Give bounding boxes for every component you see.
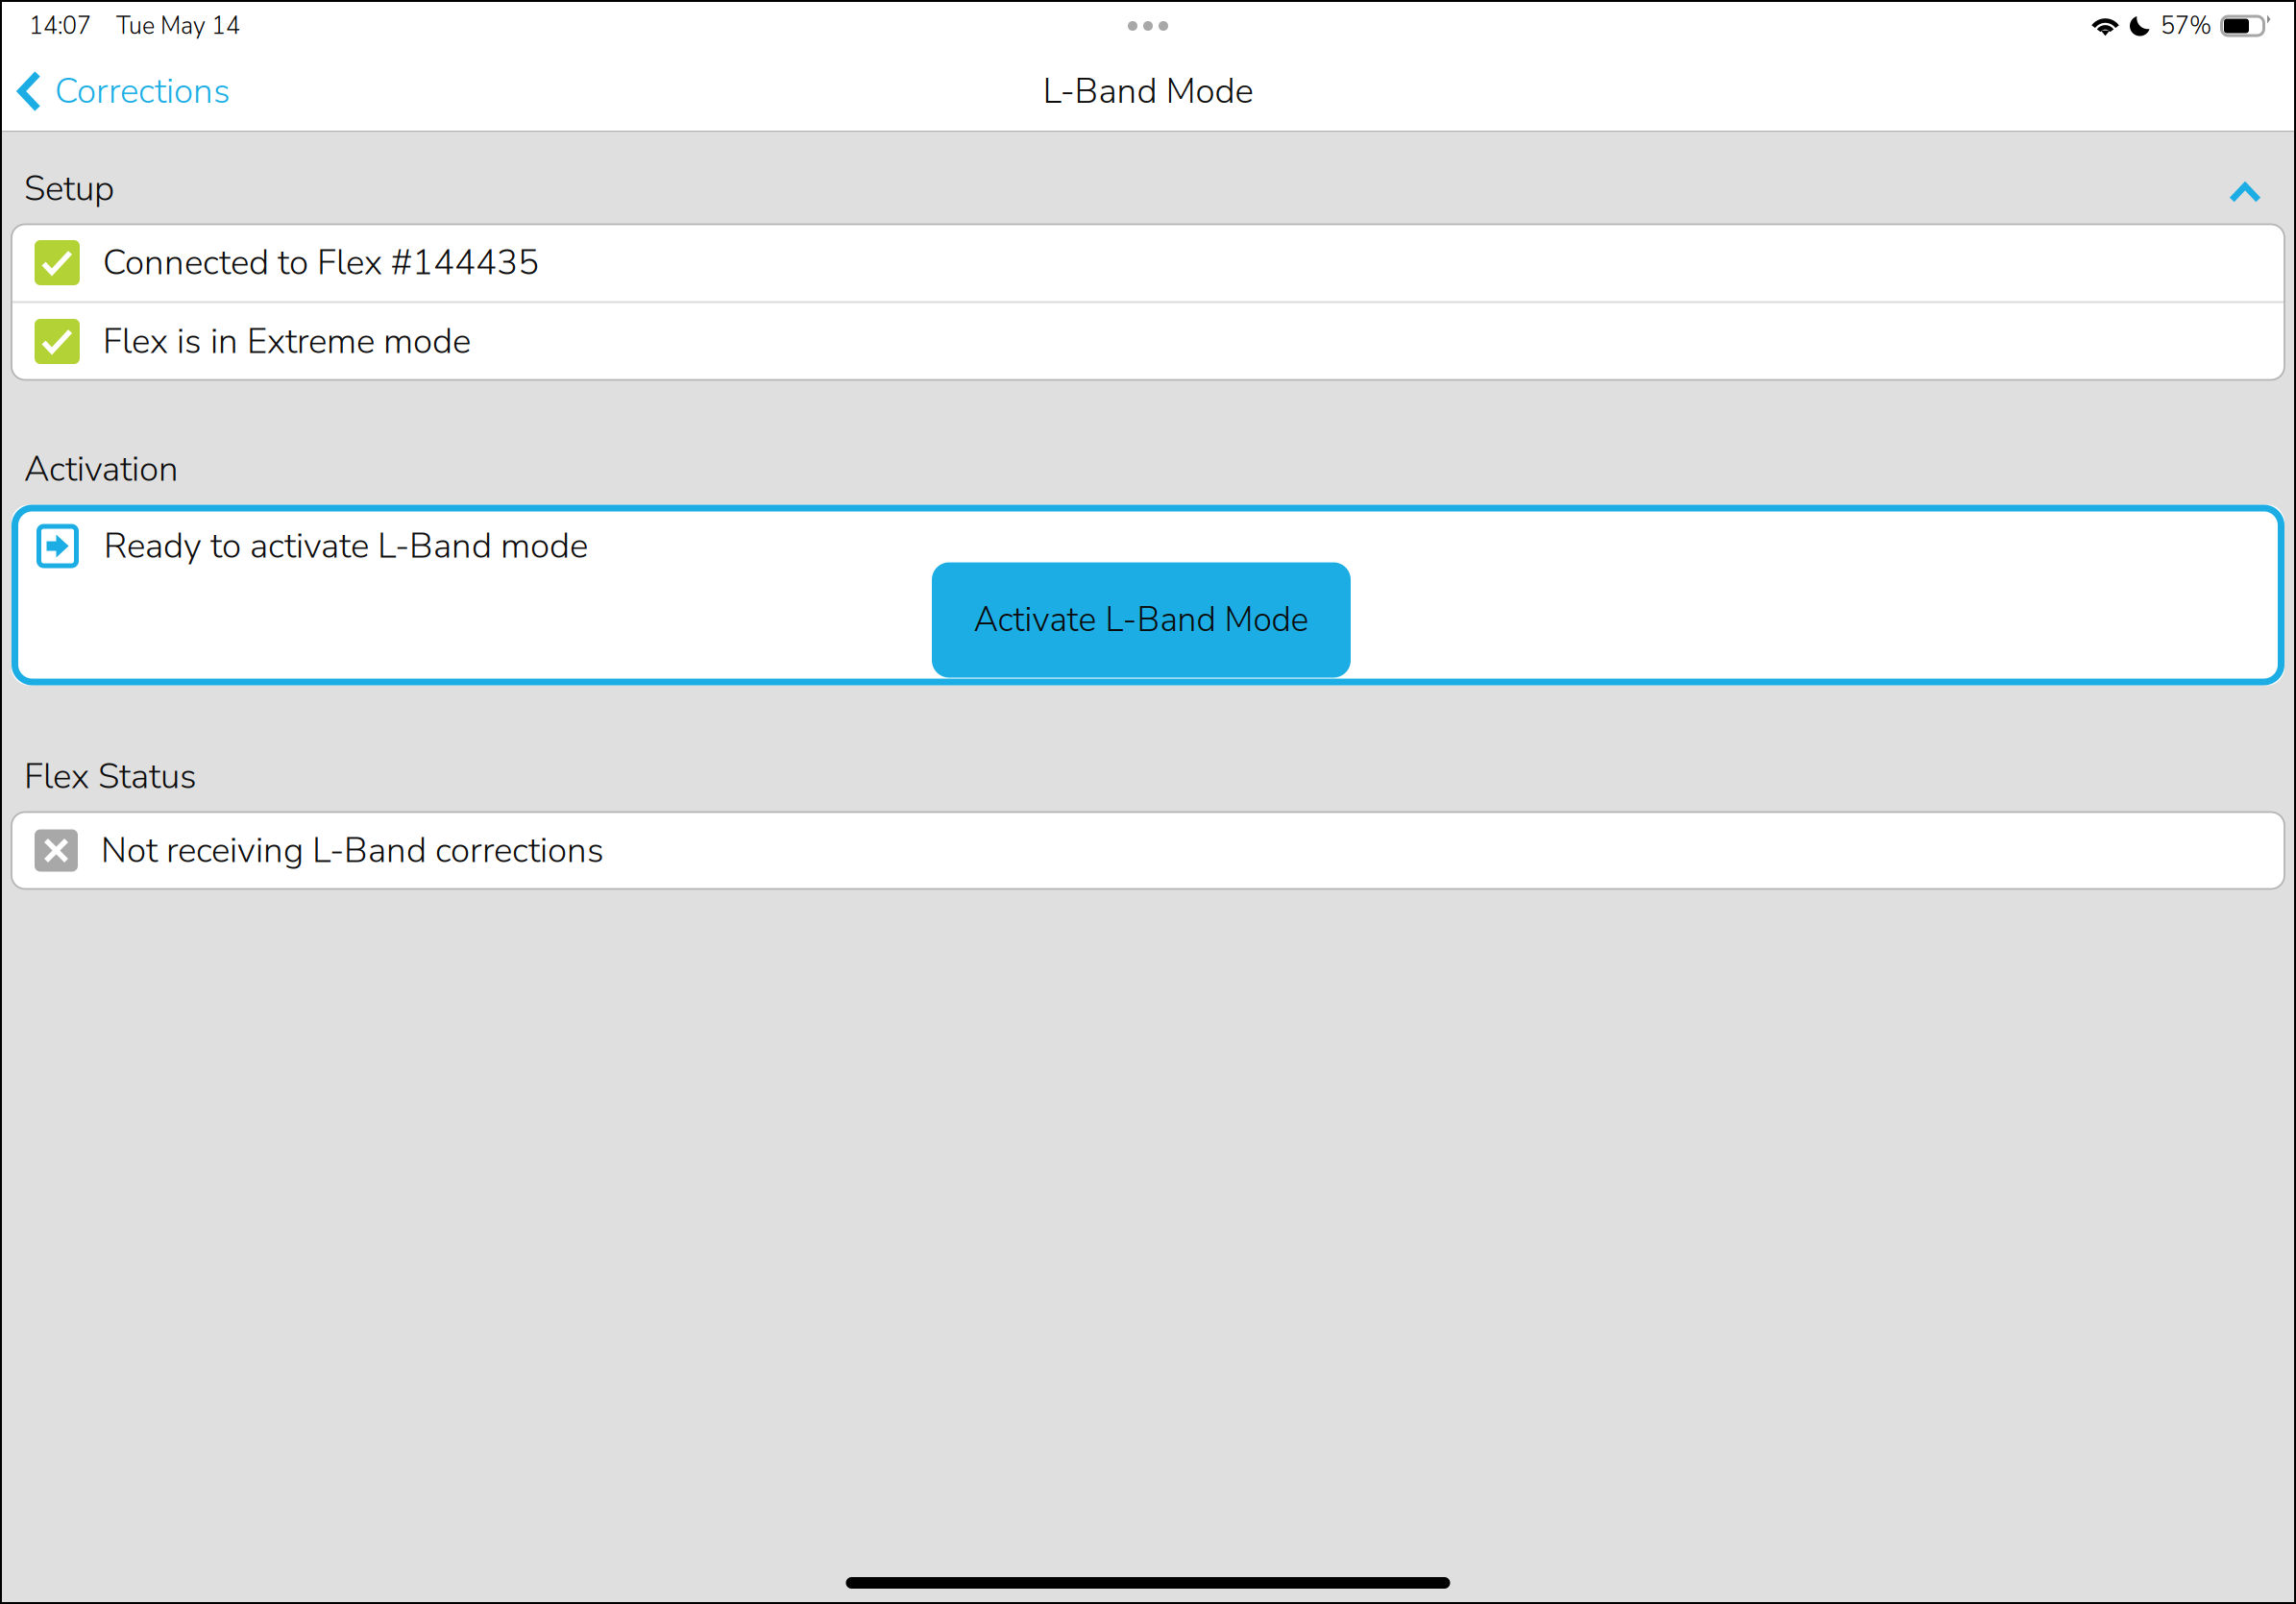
staticText: L-Band Mode	[1043, 67, 1253, 115]
staticText: Activate L-Band Mode	[974, 597, 1309, 643]
button[interactable]: Collapse Setup	[2208, 156, 2283, 222]
button[interactable]: Activate L-Band Mode	[932, 562, 1351, 678]
staticText: Flex is in Extreme mode	[103, 317, 471, 365]
staticText: Tue May 14	[116, 10, 240, 42]
staticText: Activation	[24, 445, 179, 493]
button[interactable]: Not receiving L-Band corrections	[12, 812, 2284, 889]
button[interactable]: Connected to Flex #144435	[12, 224, 2284, 301]
staticText: 14:07	[29, 10, 91, 42]
staticText: Connected to Flex #144435	[103, 239, 539, 287]
staticText: Setup	[24, 165, 114, 213]
staticText: Corrections	[55, 67, 231, 115]
staticText: Flex Status	[24, 753, 197, 801]
staticText: 57%	[2161, 10, 2211, 42]
staticText: Not receiving L-Band corrections	[101, 826, 604, 875]
staticText: Ready to activate L-Band mode	[104, 522, 588, 570]
button[interactable]: Corrections	[0, 52, 244, 131]
button[interactable]: Flex is in Extreme mode	[12, 303, 2284, 380]
